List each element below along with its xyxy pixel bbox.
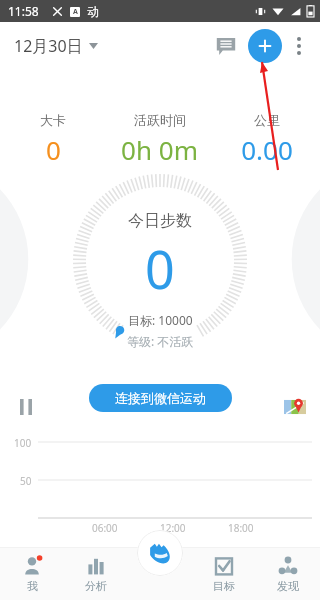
button[interactable]: 目标 [192,548,256,600]
staticText: 大卡 [40,112,66,128]
staticText: A [73,7,78,17]
staticText: 动 [87,4,99,19]
button[interactable]: 连接到微信运动 [89,384,232,412]
button[interactable]: 12月30日 [10,31,102,61]
button[interactable]: 发现 [256,548,320,600]
staticText: 12月30日 [14,35,83,57]
staticText: 12:00 [160,521,186,535]
staticText: 分析 [85,579,107,593]
button[interactable]: 大卡 [0,110,106,169]
staticText: 0h 0m [121,132,198,167]
staticText: 活跃时间 [134,112,186,128]
staticText: 今日步数 [128,211,192,231]
staticText: 18:00 [228,521,254,535]
button[interactable]: More options [282,29,316,63]
staticText: 等级: 不活跃 [127,333,194,349]
staticText: 06:00 [92,521,118,535]
button[interactable]: 活跃时间 [106,110,213,169]
staticText: 0 [145,233,175,304]
staticText: 目标: 10000 [128,312,193,328]
staticText: 11:58 [8,3,39,19]
button[interactable]: 分析 [64,548,128,600]
button[interactable]: Steps [137,530,183,576]
staticText: 连接到微信运动 [115,390,206,406]
staticText: 目标 [213,579,235,593]
button[interactable]: Add [248,29,282,63]
button[interactable]: Pause [12,393,40,421]
button[interactable]: 我 [0,548,64,600]
button[interactable]: Messages [206,26,246,66]
staticText: 我 [27,579,38,593]
button[interactable]: 公里 [213,110,320,169]
staticText: 100 [14,436,32,450]
staticText: 0.00 [241,132,293,167]
staticText: 0 [46,132,61,167]
staticText: 50 [20,474,32,488]
button[interactable]: Map [280,392,310,422]
staticText: 公里 [254,112,280,128]
staticText: 发现 [277,579,299,593]
